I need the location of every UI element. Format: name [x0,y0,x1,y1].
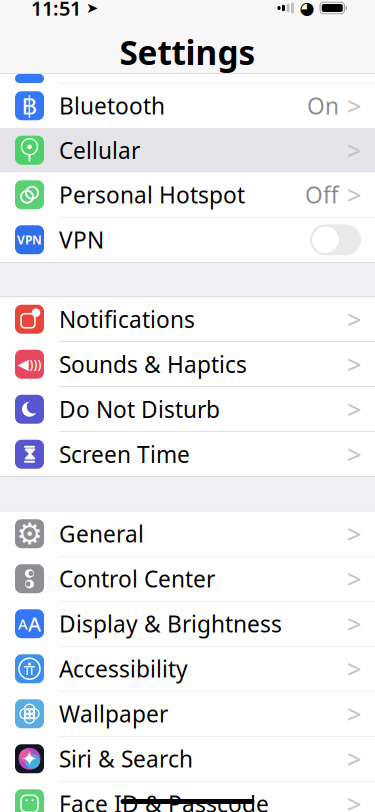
staticText: VPN [17,232,42,248]
staticText: > [347,787,361,812]
staticText: ⧗ [23,446,35,463]
button[interactable]: Face ID & Passcode [0,781,375,812]
staticText: Cellular [59,135,140,165]
button[interactable]: Notifications [0,297,375,341]
staticText: Wallpaper [59,699,168,729]
button[interactable]: VPN [0,217,375,262]
staticText: Bluetooth [59,91,165,121]
staticText: > [347,437,361,471]
staticText: Accessibility [59,654,188,684]
staticText: Sounds & Haptics [59,349,247,379]
button[interactable]: ⧗ [0,432,375,476]
staticText: Notifications [59,304,195,334]
button[interactable]: Wallpaper [0,691,375,736]
staticText: 11:51 [31,0,81,21]
staticText: ฿ [21,91,37,120]
staticText: > [347,133,361,167]
staticText: > [347,392,361,426]
button[interactable]: ฿ [0,83,375,128]
staticText: > [347,178,361,211]
staticText: ⚙ [16,517,42,550]
staticText: ))) [29,356,41,372]
button[interactable]: ⚙ [0,511,375,556]
button[interactable]: Personal Hotspot [0,172,375,217]
staticText: > [347,517,361,550]
staticText: ◕ [299,0,314,18]
staticText: Personal Hotspot [59,180,245,210]
staticText: Control Center [59,564,215,594]
staticText: > [347,89,361,122]
staticText: ✦ [21,747,38,770]
staticText: Siri & Search [59,744,193,774]
staticText: ➤ [86,0,98,16]
staticText: > [347,652,361,685]
button[interactable]: Control Center [0,556,375,601]
staticText: VPN [59,225,104,255]
staticText: ◀ [17,356,28,372]
button[interactable]: Do Not Disturb [0,387,375,431]
staticText: A [28,610,41,637]
button[interactable]: A [0,601,375,646]
staticText: > [347,562,361,595]
staticText: > [347,302,361,336]
staticText: General [59,519,144,549]
staticText: Face ID & Passcode [59,789,269,812]
staticText: Do Not Disturb [59,394,220,424]
staticText: Display & Brightness [59,609,282,639]
button[interactable]: ◀ [0,342,375,386]
staticText: > [347,742,361,775]
staticText: > [347,697,361,730]
staticText: Off [305,180,339,210]
button[interactable]: ✦ [0,736,375,781]
staticText: Settings [119,30,255,74]
staticText: > [347,347,361,381]
staticText: Screen Time [59,439,190,469]
button[interactable]: Cellular [0,128,375,172]
staticText: > [347,607,361,640]
staticText: On [307,91,339,121]
staticText: A [18,614,28,633]
button[interactable]: Accessibility [0,646,375,691]
